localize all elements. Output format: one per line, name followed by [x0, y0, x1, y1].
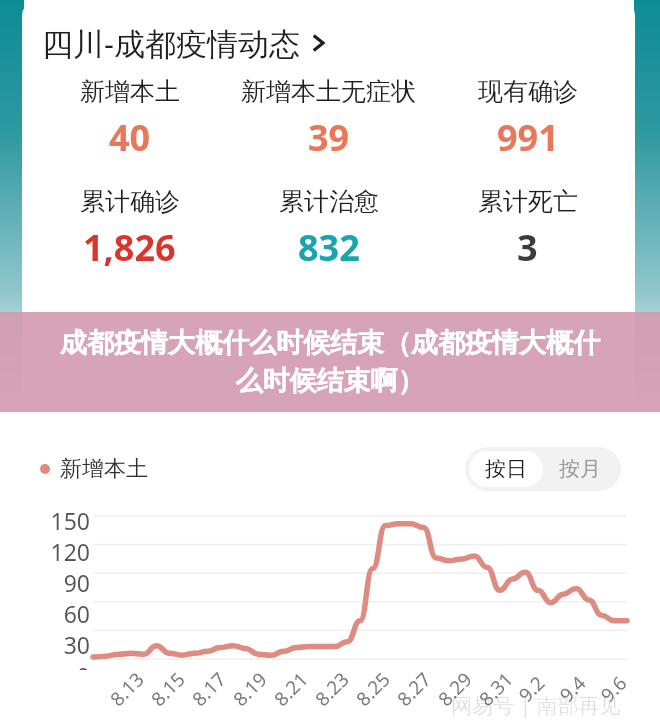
button[interactable]: 新增本土 — [30, 76, 229, 162]
staticText: 832 — [298, 223, 360, 272]
staticText: 120 — [44, 536, 90, 567]
staticText: 150 — [44, 505, 90, 536]
staticText: 四川-成都疫情动态 — [42, 22, 300, 64]
staticText: 60 — [44, 598, 90, 629]
staticText: 30 — [44, 629, 90, 660]
staticText: 累计死亡 — [478, 186, 578, 217]
staticText: 新增本土无症状 — [241, 76, 416, 107]
staticText: 累计治愈 — [279, 186, 379, 217]
staticText: 现有确诊 — [478, 76, 578, 107]
button[interactable]: 累计确诊 — [30, 186, 229, 272]
staticText: 1,826 — [83, 223, 176, 272]
staticText: 按日 — [485, 456, 527, 482]
button[interactable]: 按月 — [543, 451, 617, 487]
staticText: 8.29 — [432, 666, 478, 712]
staticText: 8.15 — [145, 666, 191, 712]
staticText: 8.13 — [104, 666, 150, 712]
staticText: 9.6 — [595, 670, 632, 708]
button[interactable]: 现有确诊 — [428, 76, 627, 162]
staticText: 累计确诊 — [80, 186, 180, 217]
staticText: 网易号 | 南部再见 — [451, 691, 621, 720]
staticText: 8.25 — [350, 666, 396, 712]
staticText: 按月 — [559, 456, 601, 482]
staticText: 3 — [517, 223, 538, 272]
staticText: 8.23 — [309, 666, 355, 712]
staticText: 991 — [497, 113, 559, 162]
button[interactable]: 累计治愈 — [229, 186, 428, 272]
staticText: 8.21 — [268, 666, 314, 712]
button[interactable]: 四川-成都疫情动态 — [22, 22, 635, 64]
staticText: 新增本土 — [60, 455, 148, 483]
button[interactable]: 按日 — [469, 451, 543, 487]
staticText: 8.19 — [227, 666, 273, 712]
staticText: 39 — [308, 113, 350, 162]
staticText: 9.2 — [513, 670, 550, 708]
staticText: 9.4 — [554, 670, 591, 708]
staticText: 8.27 — [391, 666, 437, 712]
staticText: 新增本土 — [80, 76, 180, 107]
staticText: 8.17 — [186, 666, 232, 712]
staticText: 90 — [44, 567, 90, 598]
button[interactable]: 新增本土无症状 — [229, 76, 428, 162]
staticText: 成都疫情大概什么时候结束（成都疫情大概什么时候结束啊） — [48, 326, 612, 398]
staticText: 40 — [109, 113, 151, 162]
staticText: 0 — [44, 660, 90, 670]
button[interactable]: 累计死亡 — [428, 186, 627, 272]
staticText: 8.31 — [473, 666, 519, 712]
